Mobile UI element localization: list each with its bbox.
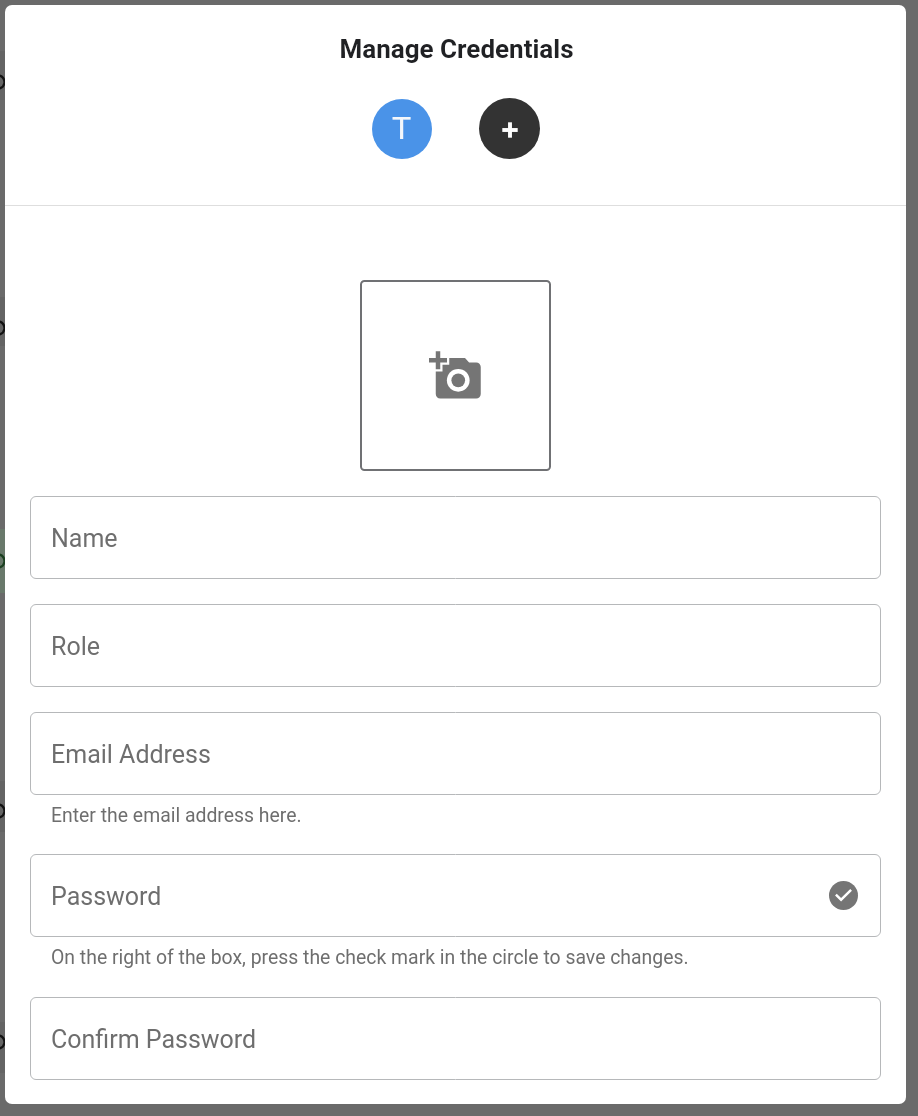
- button[interactable]: Add account: [479, 98, 540, 159]
- button[interactable]: Save changes: [829, 881, 858, 910]
- staticText: Manage Credentials: [6, 34, 906, 64]
- staticText: Enter the email address here.: [51, 804, 302, 827]
- button[interactable]: T: [372, 99, 432, 159]
- staticText: Role: [51, 632, 100, 661]
- button[interactable]: Confirm Password: [30, 997, 881, 1080]
- button[interactable]: Add a photo: [360, 280, 551, 471]
- staticText: On the right of the box, press the check…: [51, 946, 689, 969]
- staticText: Email Address: [51, 740, 211, 769]
- button[interactable]: Role: [30, 604, 881, 687]
- staticText: T: [392, 109, 412, 147]
- staticText: Name: [51, 524, 118, 553]
- staticText: Password: [51, 882, 162, 911]
- button[interactable]: Email Address: [30, 712, 881, 795]
- button[interactable]: Name: [30, 496, 881, 579]
- button[interactable]: Password: [30, 854, 881, 937]
- staticText: Confirm Password: [51, 1025, 257, 1054]
